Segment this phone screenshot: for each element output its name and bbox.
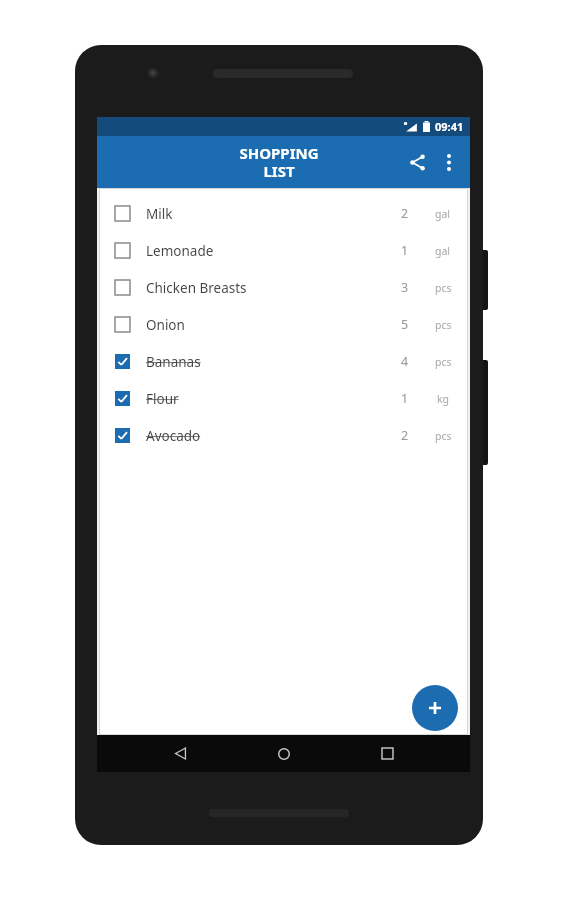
staticText: gal: [435, 244, 451, 258]
button[interactable]: Avocado: [99, 417, 468, 454]
staticText: SHOPPING LIST: [239, 143, 319, 182]
staticText: 3: [401, 279, 409, 296]
staticText: pcs: [435, 355, 452, 369]
staticText: kg: [437, 392, 450, 406]
staticText: 1: [401, 242, 409, 259]
staticText: Onion: [146, 316, 392, 334]
button[interactable]: Lemonade: [99, 232, 468, 269]
button[interactable]: Recent apps: [367, 735, 407, 772]
button[interactable]: Add item: [412, 685, 458, 731]
button[interactable]: Chicken Breasts: [99, 269, 468, 306]
staticText: pcs: [435, 429, 452, 443]
staticText: 1: [401, 390, 409, 407]
staticText: Chicken Breasts: [146, 279, 392, 297]
button[interactable]: Share: [400, 145, 434, 179]
staticText: Avocado: [146, 427, 392, 445]
button[interactable]: Flour: [99, 380, 468, 417]
staticText: 09:41: [435, 119, 464, 134]
staticText: Flour: [146, 390, 392, 408]
staticText: 2: [401, 205, 409, 222]
staticText: 5: [401, 316, 409, 333]
staticText: Milk: [146, 205, 392, 223]
button[interactable]: Home: [264, 735, 304, 772]
staticText: 4: [401, 353, 409, 370]
button[interactable]: More options: [434, 147, 464, 177]
staticText: Bananas: [146, 353, 392, 371]
button[interactable]: Milk: [99, 195, 468, 232]
button[interactable]: Onion: [99, 306, 468, 343]
staticText: gal: [435, 207, 451, 221]
button[interactable]: Bananas: [99, 343, 468, 380]
button[interactable]: Back: [160, 735, 200, 772]
staticText: pcs: [435, 318, 452, 332]
staticText: Lemonade: [146, 242, 392, 260]
staticText: pcs: [435, 281, 452, 295]
staticText: 2: [401, 427, 409, 444]
